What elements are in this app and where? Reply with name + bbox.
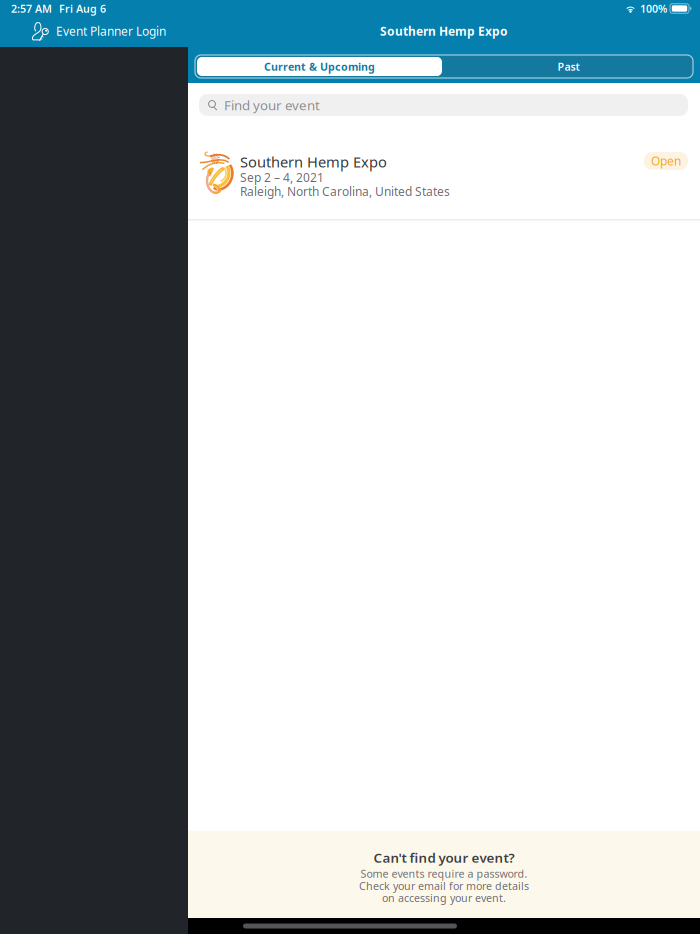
staticText: Event Planner Login — [56, 23, 166, 39]
staticText: Open — [651, 153, 681, 169]
staticText: Check your email for more details — [359, 879, 529, 893]
button[interactable]: Southern Hemp Expo — [188, 130, 700, 220]
staticText: Can't find your event? — [373, 849, 514, 866]
staticText: Sep 2 – 4, 2021 — [240, 169, 324, 185]
staticText: Current & Upcoming — [264, 59, 375, 74]
staticText: on accessing your event. — [382, 891, 506, 905]
staticText: 2:57 AM — [11, 1, 52, 16]
button[interactable]: Find your event — [199, 94, 688, 116]
button[interactable]: Past — [444, 55, 693, 78]
staticText: Southern Hemp Expo — [240, 152, 387, 171]
staticText: Some events require a password. — [360, 866, 527, 881]
staticText: Fri Aug 6 — [59, 1, 106, 16]
button[interactable]: Event Planner Login — [0, 17, 176, 45]
staticText: Past — [557, 59, 579, 74]
staticText: Southern Hemp Expo — [380, 23, 508, 39]
staticText: Raleigh, North Carolina, United States — [240, 183, 450, 199]
button[interactable]: Current & Upcoming — [195, 55, 444, 78]
staticText: Find your event — [224, 96, 320, 114]
staticText: 100% — [640, 1, 667, 16]
